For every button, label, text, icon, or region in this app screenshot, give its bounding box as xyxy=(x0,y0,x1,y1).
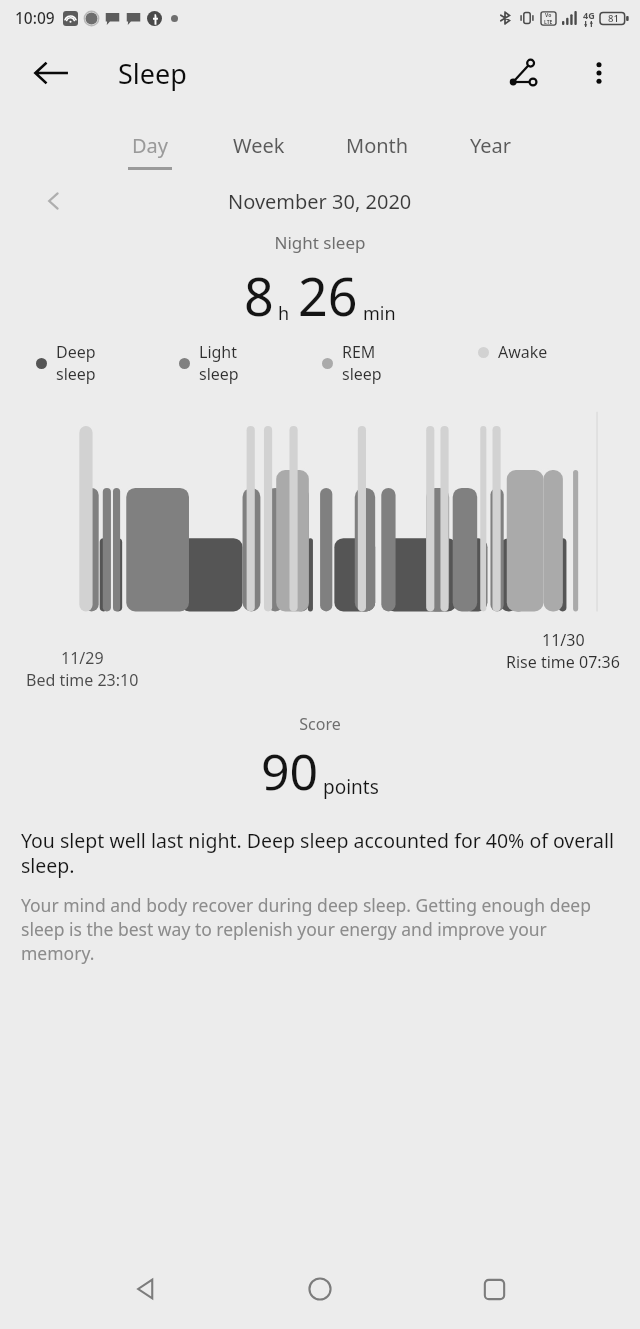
staticText: points xyxy=(323,774,379,800)
button[interactable]: Share xyxy=(500,49,548,97)
staticText: Sleep xyxy=(118,55,187,92)
button[interactable]: Year xyxy=(470,132,512,170)
staticText: 81 xyxy=(608,12,619,25)
staticText: 11/30 xyxy=(542,629,585,651)
staticText: sleep xyxy=(342,363,382,385)
button[interactable]: Home xyxy=(292,1261,348,1317)
staticText: You slept well last night. Deep sleep ac… xyxy=(21,827,619,879)
staticText: 10:09 xyxy=(15,7,55,28)
staticText: 26 xyxy=(298,260,358,331)
button[interactable]: Back xyxy=(118,1261,174,1317)
staticText: 11/29 xyxy=(61,647,104,669)
staticText: Light xyxy=(199,341,238,363)
staticText: LTE xyxy=(544,19,553,26)
staticText: Your mind and body recover during deep s… xyxy=(21,893,619,965)
button[interactable]: Recent apps xyxy=(466,1261,522,1317)
staticText: min xyxy=(363,301,396,326)
staticText: REM xyxy=(342,341,376,363)
staticText: Vo xyxy=(545,12,552,19)
staticText: Score xyxy=(0,713,640,735)
staticText: Deep xyxy=(56,341,96,363)
staticText: sleep xyxy=(56,363,96,385)
button[interactable]: Month xyxy=(346,132,409,170)
staticText: Awake xyxy=(498,341,548,363)
staticText: Year xyxy=(470,132,512,159)
staticText: Bed time 23:10 xyxy=(26,669,139,687)
button[interactable]: Week xyxy=(233,132,285,170)
staticText: November 30, 2020 xyxy=(228,188,412,215)
staticText: 90 xyxy=(261,737,319,805)
button[interactable]: More options xyxy=(576,50,622,96)
staticText: sleep xyxy=(199,363,239,385)
button[interactable]: Back xyxy=(28,50,74,96)
staticText: Day xyxy=(132,132,169,159)
staticText: h xyxy=(278,301,290,326)
staticText: Rise time 07:36 xyxy=(506,651,620,673)
staticText: Night sleep xyxy=(0,231,640,254)
staticText: Month xyxy=(346,132,409,159)
staticText: 8 xyxy=(244,260,274,331)
staticText: Week xyxy=(233,132,285,159)
staticText: 4G xyxy=(583,9,595,21)
button[interactable]: Previous day xyxy=(34,183,74,219)
button[interactable]: Day xyxy=(128,132,172,170)
